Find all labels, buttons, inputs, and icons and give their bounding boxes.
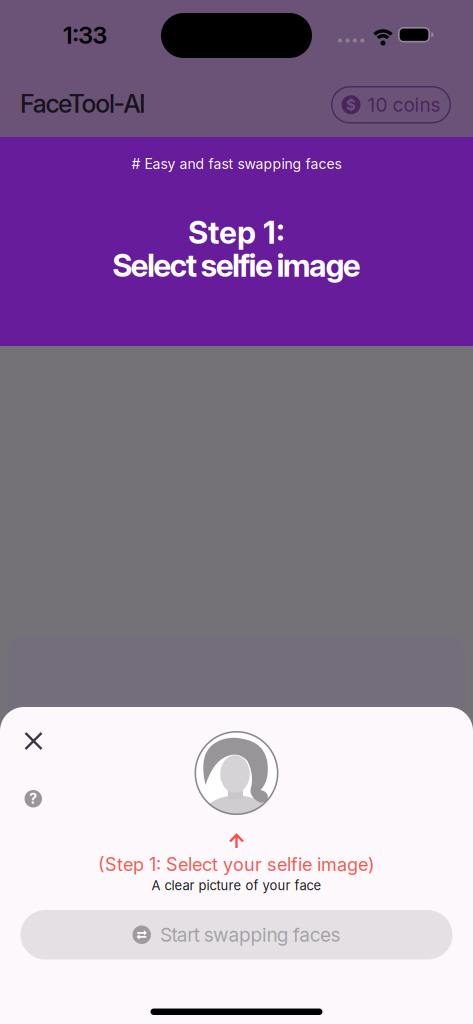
staticText: 1:33 xyxy=(63,21,107,49)
staticText: 10 coins xyxy=(367,93,440,116)
staticText: Select selfie image xyxy=(112,247,361,284)
staticText: (Step 1: Select your selfie image) xyxy=(98,854,375,875)
button[interactable]: Start swapping faces xyxy=(20,910,452,959)
button[interactable]: $ xyxy=(331,86,451,123)
staticText: FaceTool-AI xyxy=(20,89,146,118)
staticText: ? xyxy=(29,790,37,807)
staticText: $ xyxy=(346,96,356,114)
button[interactable]: Close xyxy=(24,732,42,750)
staticText: # Easy and fast swapping faces xyxy=(131,156,341,172)
button[interactable]: Help xyxy=(24,790,42,807)
staticText: A clear picture of your face xyxy=(151,878,321,893)
staticText: Start swapping faces xyxy=(160,923,341,946)
button[interactable]: Select selfie image xyxy=(194,731,278,815)
staticText: Step 1: xyxy=(188,214,285,251)
